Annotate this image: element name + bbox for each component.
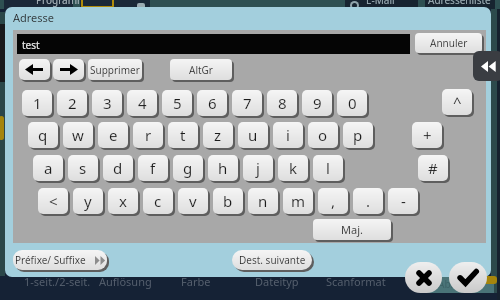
button[interactable]: 5 <box>162 90 192 116</box>
button[interactable]: Confirm <box>449 262 487 293</box>
button[interactable]: 6 <box>197 90 227 116</box>
staticText: f <box>150 158 156 178</box>
button[interactable]: 4 <box>127 90 157 116</box>
button[interactable]: v <box>178 188 208 214</box>
staticText: 6 <box>208 93 217 113</box>
button[interactable] <box>19 59 50 80</box>
button[interactable]: 2 <box>57 90 87 116</box>
staticText: h <box>218 158 228 178</box>
staticText: p <box>353 125 363 145</box>
button[interactable]: s <box>68 155 98 181</box>
button[interactable]: f <box>138 155 168 181</box>
button[interactable]: , <box>318 188 348 214</box>
staticText: 9 <box>313 93 322 113</box>
staticText: test <box>22 38 40 52</box>
staticText: w <box>72 125 84 145</box>
button[interactable]: Supprimer <box>88 59 142 80</box>
staticText: - <box>401 191 406 211</box>
button[interactable]: 1-seit./2-seit. <box>24 274 91 289</box>
staticText: Adresse <box>13 10 55 25</box>
button[interactable]: Maj. <box>313 219 391 240</box>
button[interactable]: y <box>73 188 103 214</box>
staticText: , <box>331 191 336 211</box>
staticText: Maj. <box>341 222 363 237</box>
button[interactable]: + <box>412 122 442 148</box>
button[interactable]: i <box>273 122 303 148</box>
button[interactable]: 8 <box>267 90 297 116</box>
button[interactable]: q <box>28 122 58 148</box>
button[interactable]: u <box>238 122 268 148</box>
button[interactable]: w <box>63 122 93 148</box>
button[interactable]: E-Mail <box>366 0 395 7</box>
button[interactable]: d <box>103 155 133 181</box>
button[interactable]: AltGr <box>170 59 232 80</box>
staticText: y <box>84 191 92 211</box>
button[interactable]: Programm <box>36 0 87 7</box>
button[interactable]: Préfixe/ Suffixe <box>13 250 107 270</box>
button[interactable]: t <box>168 122 198 148</box>
staticText: x <box>119 191 127 211</box>
button[interactable]: 7 <box>232 90 262 116</box>
button[interactable]: . <box>353 188 383 214</box>
button[interactable]: 9 <box>302 90 332 116</box>
button[interactable]: 3 <box>92 90 122 116</box>
button[interactable]: n <box>248 188 278 214</box>
button[interactable] <box>53 59 84 80</box>
staticText: r <box>145 125 152 145</box>
staticText: ^ <box>453 92 462 112</box>
staticText: j <box>256 158 260 178</box>
button[interactable]: Dest. suivante <box>232 250 312 270</box>
button[interactable]: Dateityp <box>255 274 299 289</box>
button[interactable]: Auflösung <box>99 274 152 289</box>
button[interactable]: z <box>203 122 233 148</box>
staticText: Abbr. <box>438 277 462 291</box>
button[interactable]: - <box>388 188 418 214</box>
button[interactable]: l <box>313 155 343 181</box>
button[interactable]: b <box>213 188 243 214</box>
staticText: t <box>180 125 186 145</box>
button[interactable]: Annuler <box>415 33 482 53</box>
staticText: 2 <box>68 93 77 113</box>
button[interactable]: k <box>278 155 308 181</box>
staticText: < <box>49 191 58 211</box>
button[interactable]: a <box>33 155 63 181</box>
staticText: 5 <box>173 93 182 113</box>
staticText: Dateityp <box>255 274 299 289</box>
button[interactable]: g <box>173 155 203 181</box>
staticText: 7 <box>243 93 252 113</box>
button[interactable]: p <box>343 122 373 148</box>
staticText: Farbe <box>181 274 211 289</box>
button[interactable]: Scanformat <box>326 274 386 289</box>
staticText: 4 <box>138 93 147 113</box>
button[interactable]: h <box>208 155 238 181</box>
button[interactable]: < <box>38 188 68 214</box>
button[interactable]: 1 <box>22 90 52 116</box>
button[interactable]: e <box>98 122 128 148</box>
button[interactable]: Adressenliste <box>428 0 491 7</box>
staticText: Préfixe/ Suffixe <box>15 253 86 267</box>
staticText: E-Mail <box>366 0 395 7</box>
button[interactable]: m <box>283 188 313 214</box>
button[interactable]: Farbe <box>181 274 211 289</box>
staticText: 1-seit./2-seit. <box>24 274 91 289</box>
button[interactable]: Abbr. <box>438 277 462 291</box>
staticText: s <box>79 158 87 178</box>
button[interactable]: 0 <box>337 90 367 116</box>
staticText: 8 <box>278 93 287 113</box>
button[interactable]: ^ <box>442 89 472 115</box>
button[interactable]: r <box>133 122 163 148</box>
button[interactable]: Rewind <box>473 51 500 81</box>
button[interactable]: x <box>108 188 138 214</box>
button[interactable]: # <box>418 155 448 181</box>
staticText: k <box>289 158 298 178</box>
button[interactable]: test <box>17 34 410 54</box>
staticText: Supprimer <box>90 63 140 77</box>
staticText: 1 <box>33 93 42 113</box>
staticText: b <box>223 191 233 211</box>
button[interactable]: j <box>243 155 273 181</box>
button[interactable]: o <box>308 122 338 148</box>
button[interactable]: c <box>143 188 173 214</box>
button[interactable]: Cancel <box>405 262 442 293</box>
staticText: Programm <box>36 0 87 7</box>
staticText: d <box>113 158 123 178</box>
